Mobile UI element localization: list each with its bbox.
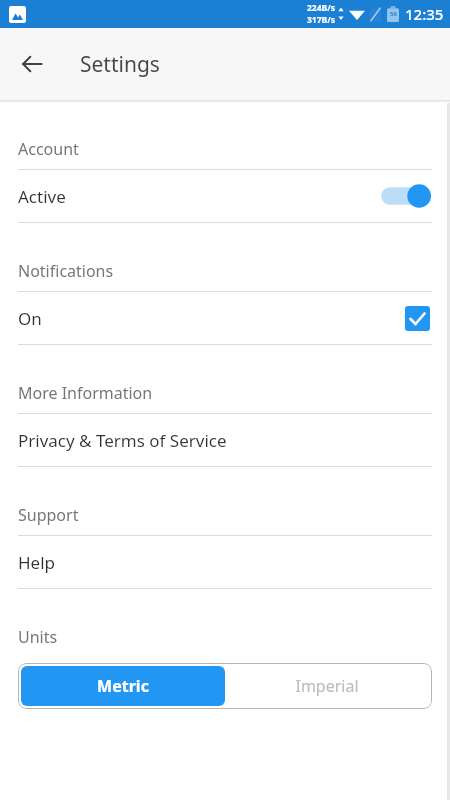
staticText: Active (18, 185, 66, 208)
button[interactable]: Back (8, 40, 56, 88)
button[interactable]: Notifications on (402, 303, 432, 333)
button[interactable]: Active (0, 170, 450, 222)
staticText: Imperial (295, 675, 359, 697)
staticText: Settings (80, 50, 160, 79)
staticText: 12:35 (405, 4, 444, 24)
staticText: Support (18, 504, 79, 526)
staticText: Units (18, 626, 58, 648)
staticText: Help (18, 551, 56, 574)
button[interactable]: Imperial (225, 666, 429, 706)
staticText: Privacy & Terms of Service (18, 429, 227, 452)
button[interactable]: Active toggle, on (378, 180, 432, 212)
button[interactable]: Help (0, 536, 450, 588)
staticText: Notifications (18, 260, 114, 282)
staticText: Metric (97, 675, 149, 697)
staticText: More Information (18, 382, 153, 404)
staticText: On (18, 307, 42, 330)
staticText: Account (18, 138, 79, 160)
staticText: 317B/s (307, 14, 336, 26)
staticText: 56 (390, 10, 397, 18)
button[interactable]: Privacy & Terms of Service (0, 414, 450, 466)
staticText: 224B/s (307, 2, 336, 14)
button[interactable]: Metric (21, 666, 225, 706)
button[interactable]: On (0, 292, 450, 344)
